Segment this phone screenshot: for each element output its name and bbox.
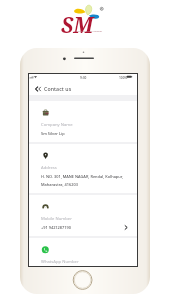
- staticText: 100%: [119, 76, 128, 80]
- button[interactable]: WhatsApp Number: [29, 238, 137, 266]
- staticText: SM: [61, 11, 94, 40]
- staticText: Address: [41, 165, 57, 171]
- staticText: Contact us: [44, 85, 72, 92]
- button[interactable]: Address: [29, 144, 137, 193]
- staticText: 9:30: [80, 76, 87, 80]
- staticText: WhatsApp Number: [41, 259, 79, 265]
- staticText: Company Name: [41, 122, 73, 128]
- staticText: Sm Silver Lip: [41, 131, 65, 136]
- button[interactable]: Back: [34, 85, 42, 93]
- staticText: Maharastra, 416203: [41, 182, 78, 187]
- button[interactable]: Back: [29, 83, 137, 95]
- button[interactable]: Call: [123, 224, 129, 230]
- staticText: H. NO. 301, MANE NAGAR, Rendal, Kolhapur…: [41, 174, 123, 179]
- staticText: Mobile Number: [41, 216, 72, 222]
- button[interactable]: Company Name: [29, 101, 137, 142]
- button[interactable]: Mobile Number: [29, 195, 137, 236]
- staticText: Process of Quality Standards: [75, 30, 103, 33]
- staticText: +91 9421287190: [41, 225, 71, 230]
